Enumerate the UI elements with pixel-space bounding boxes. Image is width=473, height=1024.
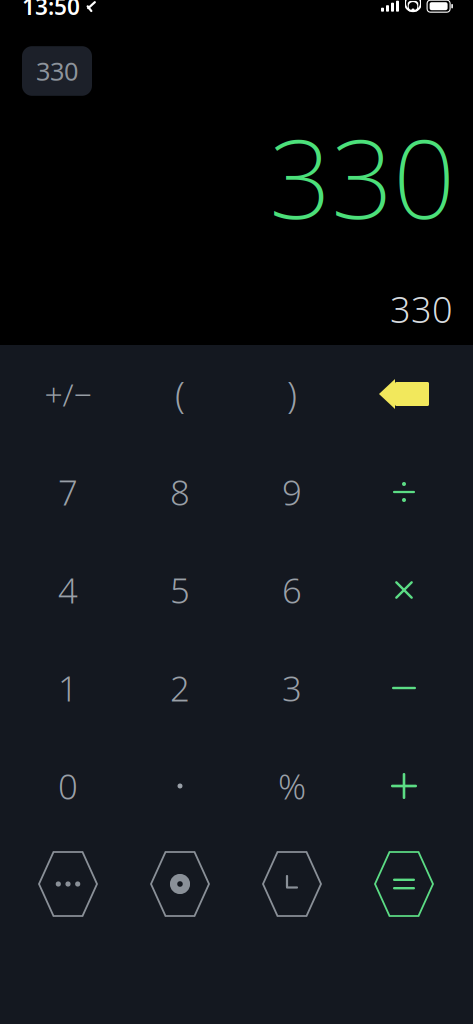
staticText: 7 <box>58 469 78 515</box>
staticText: 4 <box>58 567 78 613</box>
button[interactable]: Plus minus <box>12 345 124 443</box>
staticText: 2 <box>170 665 190 711</box>
button[interactable]: Add <box>348 737 460 835</box>
staticText: 1 <box>58 665 78 711</box>
staticText: 0 <box>58 763 78 809</box>
staticText: ) <box>287 370 297 418</box>
button[interactable]: 7 <box>12 443 124 541</box>
button[interactable]: 5 <box>124 541 236 639</box>
button[interactable]: Close parenthesis <box>236 345 348 443</box>
button[interactable]: History <box>236 835 348 933</box>
button[interactable]: 0 <box>12 737 124 835</box>
staticText: 6 <box>282 567 302 613</box>
button[interactable]: 330 <box>22 46 92 96</box>
staticText: 330 <box>390 285 453 333</box>
staticText: % <box>278 763 306 809</box>
staticText: 9 <box>282 469 302 515</box>
button[interactable]: Divide <box>348 443 460 541</box>
button[interactable]: Open parenthesis <box>124 345 236 443</box>
button[interactable]: Subtract <box>348 639 460 737</box>
button[interactable]: Backspace <box>348 345 460 443</box>
staticText: 3 <box>282 665 302 711</box>
staticText: 330 <box>36 54 78 88</box>
staticText: +/− <box>44 373 91 415</box>
button[interactable]: 4 <box>12 541 124 639</box>
button[interactable]: % <box>236 737 348 835</box>
button[interactable]: 8 <box>124 443 236 541</box>
button[interactable]: 1 <box>12 639 124 737</box>
button[interactable]: Settings <box>124 835 236 933</box>
button[interactable]: Decimal point <box>124 737 236 835</box>
button[interactable]: Equals <box>348 835 460 933</box>
staticText: 8 <box>170 469 190 515</box>
button[interactable]: 2 <box>124 639 236 737</box>
staticText: 13:50 <box>22 0 80 21</box>
button[interactable]: More options <box>12 835 124 933</box>
button[interactable]: 6 <box>236 541 348 639</box>
staticText: 330 <box>269 104 455 249</box>
button[interactable]: Multiply <box>348 541 460 639</box>
staticText: 5 <box>170 567 190 613</box>
staticText: ( <box>175 370 185 418</box>
button[interactable]: 9 <box>236 443 348 541</box>
button[interactable]: 3 <box>236 639 348 737</box>
